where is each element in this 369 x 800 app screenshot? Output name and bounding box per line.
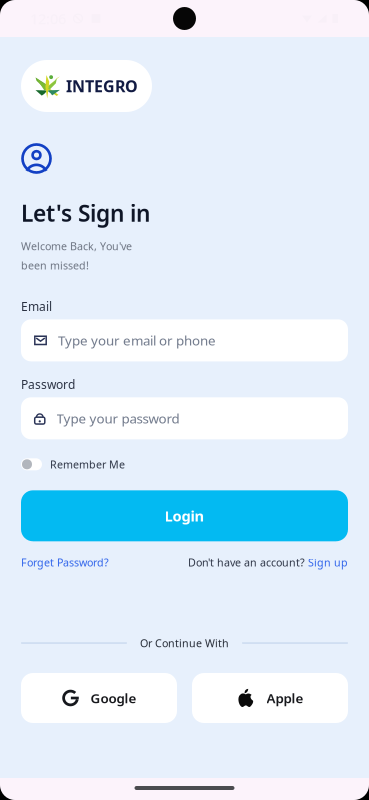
staticText: Welcome Back, You've [21,239,132,253]
staticText: INTEGRO [66,75,138,97]
button[interactable]: Remember Me [21,457,348,471]
button[interactable]: Apple [192,673,348,723]
staticText: been missed! [21,258,89,272]
staticText: Email [21,298,52,314]
staticText: Remember Me [50,457,125,471]
staticText: Type your password [56,409,179,427]
staticText: Apple [266,689,303,707]
staticText: Let's Sign in [21,198,150,228]
staticText: Google [90,689,136,707]
button[interactable]: Login [21,490,348,541]
staticText: Sign up [308,555,348,569]
staticText: Password [21,376,75,392]
button[interactable]: Google [21,673,177,723]
staticText: Type your email or phone [58,331,216,349]
staticText: Login [164,506,204,526]
staticText: Don't have an account? [188,555,305,569]
button[interactable]: Sign up [308,555,348,569]
staticText: Forget Password? [21,555,109,569]
staticText: Or Continue With [140,636,229,650]
button[interactable]: Forget Password? [21,555,109,569]
